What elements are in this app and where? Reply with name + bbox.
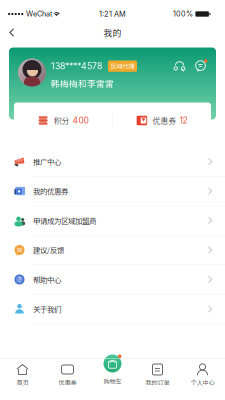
- button[interactable]: 我的订单: [135, 358, 180, 400]
- button[interactable]: ?: [0, 265, 225, 294]
- staticText: 我的订单: [145, 378, 169, 387]
- staticText: 韩梅梅和李雷雷: [51, 77, 114, 89]
- button[interactable]: 我的优惠券: [0, 176, 225, 206]
- button[interactable]: 推广中心: [0, 147, 225, 176]
- staticText: 购物车: [103, 377, 121, 386]
- staticText: 我的优惠券: [33, 186, 68, 196]
- button[interactable]: 客服: [174, 60, 185, 71]
- staticText: 138****4578: [51, 61, 102, 71]
- staticText: 1:21 AM: [99, 9, 126, 18]
- button[interactable]: 申请成为区域加盟商: [0, 206, 225, 235]
- staticText: 400: [73, 115, 89, 126]
- staticText: 我的: [103, 26, 121, 39]
- button[interactable]: 个人中心: [180, 358, 225, 400]
- button[interactable]: 建议/反馈: [0, 235, 225, 265]
- staticText: 首页: [16, 378, 28, 387]
- staticText: 帮助中心: [33, 274, 61, 285]
- staticText: 优惠券: [58, 378, 76, 387]
- staticText: 12: [179, 115, 187, 126]
- staticText: 申请成为区域加盟商: [33, 215, 96, 226]
- staticText: ?: [18, 276, 21, 283]
- staticText: 推广中心: [33, 156, 61, 167]
- button[interactable]: 优惠券: [45, 358, 90, 400]
- button[interactable]: Back: [0, 21, 23, 43]
- staticText: 个人中心: [190, 378, 214, 387]
- staticText: 积分: [54, 115, 70, 126]
- button[interactable]: 头像: [18, 58, 46, 86]
- staticText: 关于我们: [33, 304, 61, 314]
- button[interactable]: 首页: [0, 358, 45, 400]
- staticText: 优惠券: [152, 115, 176, 126]
- staticText: 区域代理: [110, 62, 134, 71]
- staticText: 建议/反馈: [33, 245, 64, 255]
- button[interactable]: 购物车: [90, 358, 135, 400]
- button[interactable]: 优惠券: [113, 102, 211, 138]
- staticText: 100%: [173, 10, 193, 18]
- button[interactable]: 积分: [14, 102, 112, 138]
- button[interactable]: 关于我们: [0, 294, 225, 324]
- button[interactable]: 消息: [195, 60, 206, 71]
- staticText: WeChat: [26, 10, 52, 18]
